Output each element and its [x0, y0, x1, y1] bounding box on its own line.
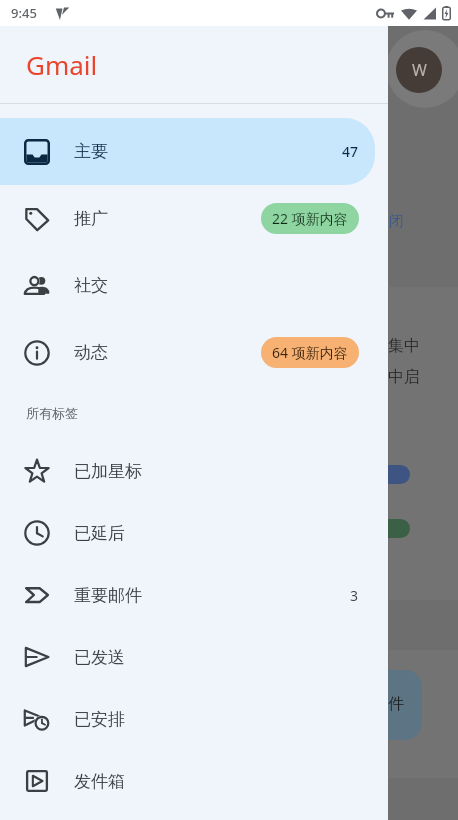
staticText: 发件箱 [74, 771, 125, 792]
staticText: 动态 [74, 342, 108, 363]
staticText: W [412, 59, 427, 81]
button[interactable]: 社交 [0, 252, 375, 319]
staticText: 已加星标 [74, 461, 142, 482]
button[interactable]: 已发送 [0, 626, 375, 688]
button[interactable]: 推广 [0, 185, 375, 252]
staticText: 主要 [74, 141, 108, 162]
staticText: 已安排 [74, 709, 125, 730]
staticText: 47 [342, 142, 359, 161]
other: Location [55, 6, 70, 21]
staticText: 重要邮件 [74, 585, 142, 606]
staticText: 所有标签 [26, 405, 78, 421]
button[interactable]: 重要邮件 [0, 564, 375, 626]
staticText: 集中 [388, 336, 420, 356]
staticText: 推广 [74, 208, 108, 229]
button[interactable]: 已安排 [0, 688, 375, 750]
staticText: 3 [350, 586, 359, 605]
button[interactable]: 主要 [0, 118, 375, 185]
button[interactable]: 已延后 [0, 502, 375, 564]
staticText: Gmail [26, 47, 98, 82]
button[interactable]: Account [396, 47, 442, 93]
staticText: 64 项新内容 [272, 343, 348, 362]
staticText: 闭 [389, 212, 404, 231]
staticText: 22 项新内容 [272, 209, 348, 228]
staticText: 社交 [74, 275, 108, 296]
staticText: 已发送 [74, 647, 125, 668]
button[interactable]: 动态 [0, 319, 375, 386]
staticText: 已延后 [74, 523, 125, 544]
button[interactable]: 已加星标 [0, 440, 375, 502]
staticText: 件 [388, 694, 404, 714]
button[interactable]: 发件箱 [0, 750, 375, 812]
staticText: 9:45 [11, 4, 37, 22]
staticText: 中启 [388, 367, 420, 387]
